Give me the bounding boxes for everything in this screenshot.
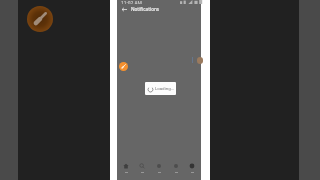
button[interactable]: Tab (151, 158, 167, 180)
button[interactable]: Tab (184, 158, 200, 180)
staticText: Loading... (155, 86, 175, 92)
staticText: Notifications (131, 6, 160, 12)
button[interactable]: Tab (118, 158, 134, 180)
button[interactable]: Back (121, 6, 127, 12)
button[interactable]: Compose (27, 6, 53, 32)
button[interactable]: Tab (168, 158, 184, 180)
button[interactable]: Compose (119, 62, 128, 71)
button[interactable]: Tab (134, 158, 150, 180)
staticText: 11:02 AM (121, 0, 142, 4)
